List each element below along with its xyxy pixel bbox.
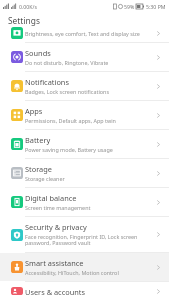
- button[interactable]: Users & accounts: [0, 282, 169, 300]
- staticText: Face recognition, Fingerprint ID, Lock s…: [25, 233, 152, 247]
- button[interactable]: Notifications: [0, 72, 169, 100]
- staticText: Do not disturb, Ringtone, Vibrate: [25, 59, 109, 66]
- staticText: Storage: [25, 164, 52, 174]
- staticText: 0.00K/s: [19, 3, 37, 10]
- staticText: Screen time management: [25, 204, 91, 211]
- staticText: Users & accounts: [25, 287, 86, 295]
- staticText: Sounds: [25, 48, 51, 58]
- staticText: Battery: [25, 135, 51, 145]
- staticText: Security & privacy: [25, 222, 87, 232]
- staticText: 5:30 PM: [146, 3, 166, 10]
- staticText: Permissions, Default apps, App twin: [25, 117, 116, 124]
- button[interactable]: Security & privacy: [0, 217, 169, 252]
- button[interactable]: Sounds: [0, 43, 169, 71]
- button[interactable]: Storage: [0, 159, 169, 187]
- button[interactable]: Battery: [0, 130, 169, 158]
- staticText: Badges, Lock screen notifications: [25, 88, 109, 95]
- staticText: Digital balance: [25, 193, 77, 203]
- staticText: Apps: [25, 106, 43, 116]
- staticText: Accessibility, HiTouch, Motion control: [25, 269, 119, 276]
- button[interactable]: Digital balance: [0, 188, 169, 216]
- staticText: Brightness, eye comfort, Text and displa…: [25, 30, 140, 37]
- staticText: Smart assistance: [25, 258, 84, 268]
- staticText: Power saving mode, Battery usage: [25, 146, 113, 153]
- button[interactable]: Brightness, eye comfort, Text and displa…: [0, 27, 169, 42]
- staticText: Notifications: [25, 77, 69, 87]
- staticText: Storage cleaner: [25, 175, 65, 182]
- staticText: 59%: [124, 3, 135, 10]
- button[interactable]: Apps: [0, 101, 169, 129]
- staticText: Settings: [8, 15, 40, 26]
- button[interactable]: Smart assistance: [0, 253, 169, 281]
